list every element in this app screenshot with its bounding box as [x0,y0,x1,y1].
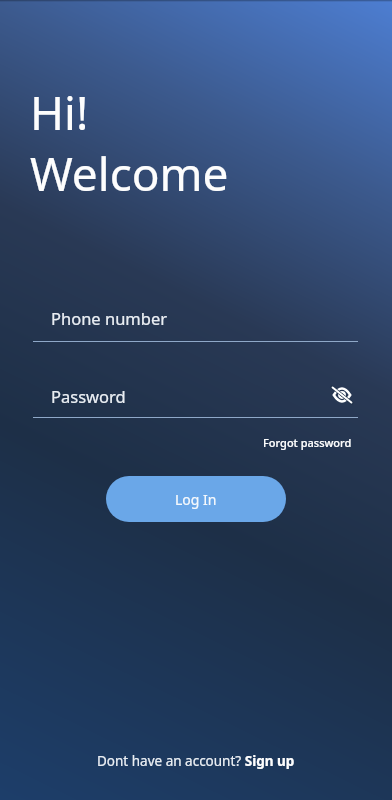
staticText: Forgot password [263,435,352,450]
staticText: Hi! [30,81,89,144]
button[interactable]: Show password [327,380,357,410]
staticText: Log In [175,490,217,509]
button[interactable]: Log In [106,476,286,522]
button[interactable]: Dont have an account? Sign up [93,748,299,774]
staticText: Welcome [30,142,229,205]
staticText: Password [51,385,126,407]
staticText: Dont have an account? Sign up [97,752,295,770]
button[interactable]: Forgot password [258,430,357,455]
staticText: Phone number [51,307,168,329]
